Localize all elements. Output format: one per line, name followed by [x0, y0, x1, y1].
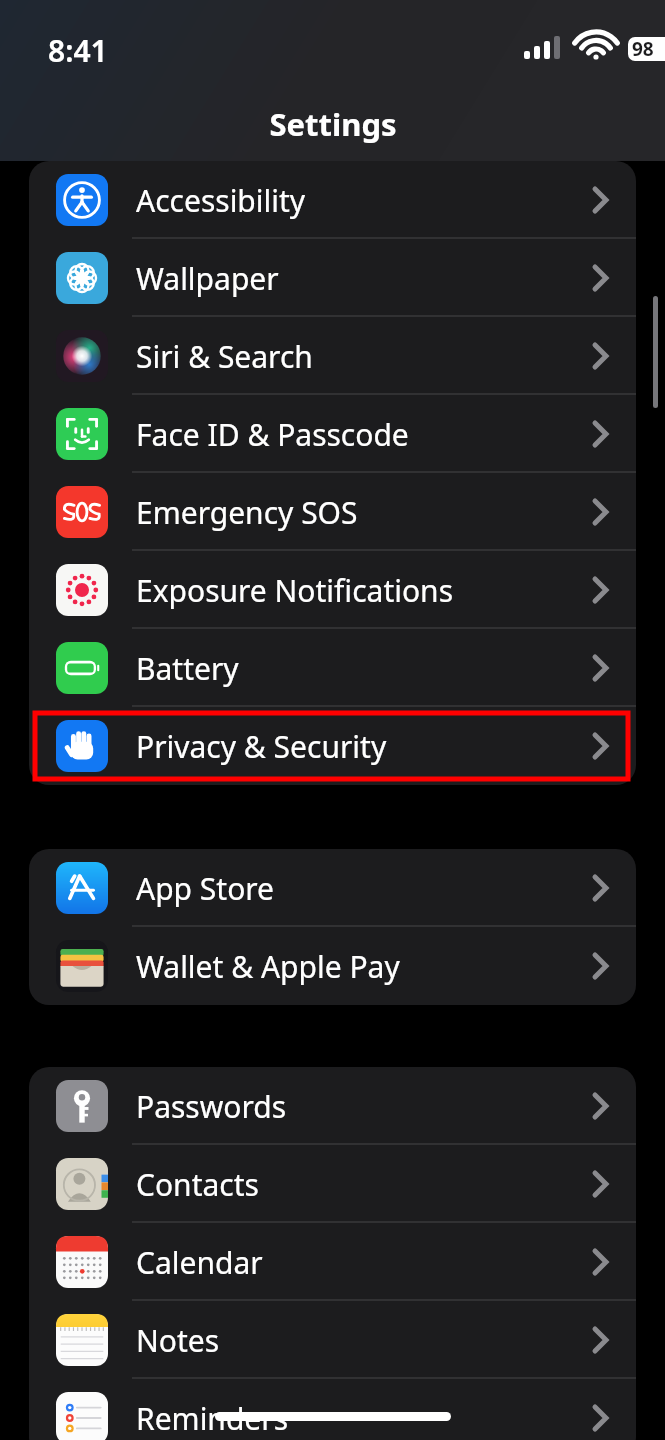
button[interactable]: Face ID & Passcode: [29, 395, 636, 473]
staticText: Settings: [269, 103, 397, 145]
staticText: Contacts: [136, 1164, 259, 1205]
button[interactable]: Privacy & Security: [29, 707, 636, 785]
staticText: Calendar: [136, 1242, 263, 1283]
button[interactable]: Notes: [29, 1301, 636, 1379]
staticText: Siri & Search: [136, 336, 313, 377]
staticText: App Store: [136, 868, 275, 909]
button[interactable]: Wallet & Apple Pay: [29, 927, 636, 1005]
staticText: Notes: [136, 1320, 220, 1361]
button[interactable]: Reminders: [29, 1379, 636, 1440]
staticText: Emergency SOS: [136, 492, 358, 533]
staticText: 98: [632, 36, 654, 62]
staticText: Passwords: [136, 1086, 287, 1127]
staticText: Exposure Notifications: [136, 570, 454, 611]
staticText: Reminders: [136, 1398, 289, 1439]
staticText: Face ID & Passcode: [136, 414, 409, 455]
button[interactable]: Emergency SOS: [29, 473, 636, 551]
button[interactable]: Calendar: [29, 1223, 636, 1301]
staticText: Wallet & Apple Pay: [136, 946, 400, 987]
staticText: 8:41: [48, 30, 108, 71]
button[interactable]: Accessibility: [29, 161, 636, 239]
button[interactable]: App Store: [29, 849, 636, 927]
staticText: Privacy & Security: [136, 726, 387, 767]
button[interactable]: Passwords: [29, 1067, 636, 1145]
staticText: Accessibility: [136, 180, 306, 221]
button[interactable]: Siri & Search: [29, 317, 636, 395]
button[interactable]: Battery: [29, 629, 636, 707]
staticText: Battery: [136, 648, 239, 689]
button[interactable]: Contacts: [29, 1145, 636, 1223]
button[interactable]: Exposure Notifications: [29, 551, 636, 629]
staticText: Wallpaper: [136, 258, 279, 299]
button[interactable]: Wallpaper: [29, 239, 636, 317]
